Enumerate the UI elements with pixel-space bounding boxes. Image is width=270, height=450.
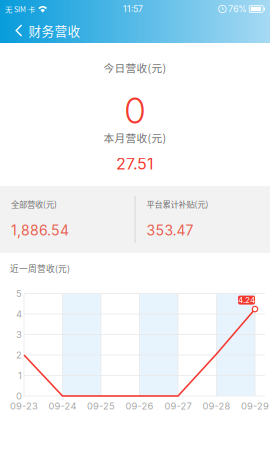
staticText: 4.24 <box>238 295 255 305</box>
staticText: 2 <box>16 350 22 361</box>
staticText: 09-27 <box>164 400 191 412</box>
staticText: 09-29 <box>241 400 269 412</box>
staticText: 09-26 <box>125 400 153 412</box>
staticText: 09-23 <box>10 400 38 412</box>
staticText: 0 <box>124 90 145 132</box>
staticText: 1 <box>18 370 22 381</box>
staticText: 09-28 <box>202 400 230 412</box>
staticText: 5 <box>16 288 22 299</box>
staticText: 0 <box>16 391 22 402</box>
staticText: 财务营收 <box>29 21 81 40</box>
button[interactable]: 财务营收 <box>0 18 270 43</box>
staticText: 平台累计补贴(元) <box>146 198 208 210</box>
staticText: 09-25 <box>87 400 115 412</box>
staticText: 27.51 <box>116 154 154 173</box>
staticText: 全部营收(元) <box>11 198 57 210</box>
staticText: 本月营收(元) <box>103 130 166 145</box>
staticText: 09-24 <box>48 400 76 412</box>
staticText: 11:57 <box>123 4 143 14</box>
staticText: 无 SIM 卡 <box>5 4 35 14</box>
staticText: 353.47 <box>146 222 193 239</box>
staticText: 今日营收(元) <box>103 60 166 75</box>
staticText: 4 <box>16 309 22 320</box>
staticText: 近一周营收(元) <box>10 262 70 274</box>
staticText: 1,886.54 <box>11 222 69 239</box>
staticText: 3 <box>16 329 22 340</box>
staticText: 76% <box>228 4 247 14</box>
